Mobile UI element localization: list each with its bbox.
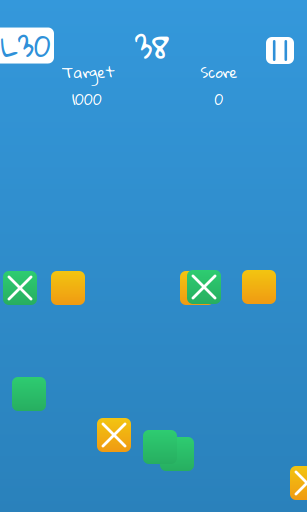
staticText: Target: [61, 57, 114, 87]
staticText: 38: [135, 16, 169, 76]
button[interactable]: L30: [0, 27, 54, 63]
button[interactable]: Pause: [266, 37, 294, 64]
staticText: Score: [200, 57, 237, 87]
staticText: 0: [214, 84, 223, 114]
staticText: 1000: [72, 84, 102, 114]
staticText: L30: [1, 18, 50, 73]
